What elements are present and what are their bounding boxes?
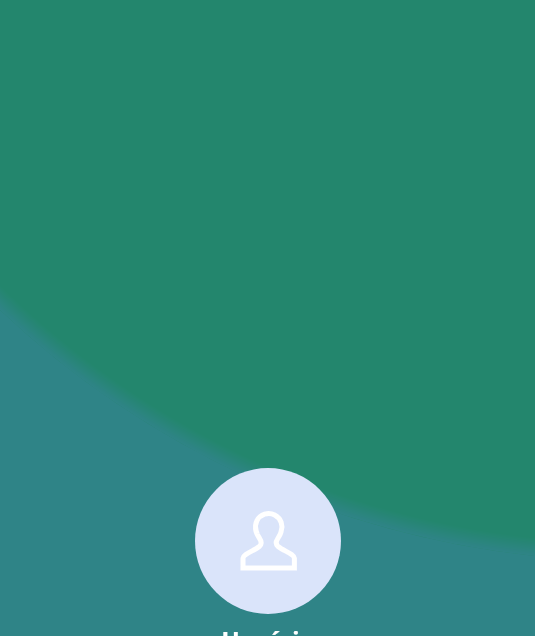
- button[interactable]: Profile picture: [195, 468, 341, 614]
- button[interactable]: Usuário: [221, 623, 315, 636]
